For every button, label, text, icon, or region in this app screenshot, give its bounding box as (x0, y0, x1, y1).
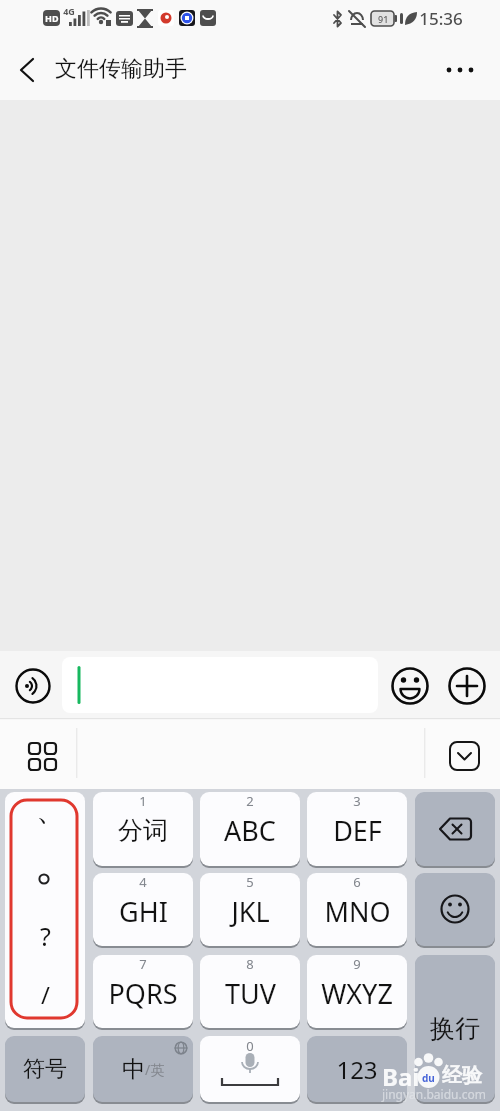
staticText: 0 (246, 1037, 254, 1053)
staticText: DEF (333, 812, 382, 849)
button[interactable] (415, 792, 495, 866)
staticText: TUV (225, 975, 276, 1012)
button[interactable] (62, 657, 378, 713)
staticText: 7 (139, 955, 147, 972)
staticText: JKL (231, 893, 270, 930)
button[interactable] (415, 955, 495, 1102)
staticText: 123 (336, 1053, 378, 1086)
button[interactable] (415, 873, 495, 946)
staticText: ABC (224, 812, 276, 849)
staticText: GHI (119, 893, 168, 930)
staticText: ? (40, 919, 51, 953)
button[interactable] (307, 1036, 407, 1102)
button[interactable] (200, 955, 300, 1028)
staticText: 分词 (118, 815, 168, 846)
staticText: /英 (145, 1060, 165, 1079)
staticText: 5 (246, 873, 254, 890)
staticText: 换行 (430, 1013, 480, 1044)
button[interactable] (93, 792, 193, 866)
staticText: 文件传输助手 (55, 55, 187, 83)
button[interactable] (93, 955, 193, 1028)
button[interactable] (200, 1036, 300, 1102)
staticText: 4 (139, 873, 147, 890)
staticText: 4G (63, 5, 75, 17)
button[interactable] (5, 1036, 85, 1102)
staticText: Bai (382, 1060, 420, 1090)
staticText: du (422, 1071, 435, 1085)
staticText: PQRS (108, 975, 178, 1012)
button[interactable] (449, 668, 485, 704)
staticText: WXYZ (321, 975, 393, 1012)
button[interactable] (0, 36, 260, 100)
staticText: 、 (36, 791, 66, 829)
staticText: 1 (139, 792, 147, 809)
staticText: 8 (246, 955, 254, 972)
staticText: jingyan.baidu.com (382, 1086, 486, 1102)
button[interactable] (200, 873, 300, 946)
button[interactable] (307, 792, 407, 866)
staticText: 经验 (442, 1063, 482, 1088)
staticText: 9 (353, 955, 361, 972)
button[interactable] (20, 734, 64, 778)
staticText: HD (45, 12, 59, 24)
button[interactable] (5, 792, 85, 1028)
staticText: 符号 (23, 1055, 67, 1083)
button[interactable] (307, 873, 407, 946)
button[interactable] (200, 792, 300, 866)
staticText: 91 (378, 13, 389, 25)
staticText: / (41, 978, 50, 1011)
staticText: 中 (122, 1055, 145, 1084)
staticText: 15:36 (419, 7, 463, 29)
staticText: 2 (246, 792, 254, 809)
button[interactable] (442, 734, 486, 778)
button[interactable] (307, 955, 407, 1028)
button[interactable] (15, 668, 51, 704)
button[interactable] (392, 668, 428, 704)
staticText: 6 (353, 873, 361, 890)
button[interactable] (93, 1036, 193, 1102)
staticText: 3 (353, 792, 361, 809)
staticText: MNO (324, 893, 391, 930)
button[interactable] (93, 873, 193, 946)
